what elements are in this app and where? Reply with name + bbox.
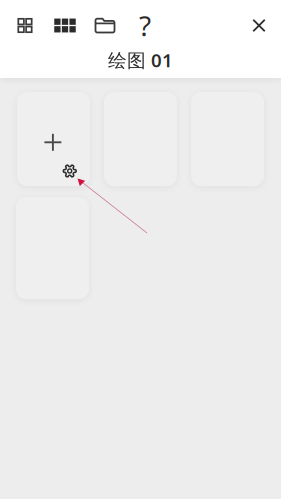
- button[interactable]: Small grid view: [5, 6, 45, 44]
- staticText: 绘图 01: [108, 48, 173, 72]
- button[interactable]: Close: [239, 6, 279, 44]
- button[interactable]: New drawing: [17, 92, 90, 186]
- button[interactable]: Large grid view: [45, 6, 85, 44]
- staticText: ?: [139, 7, 151, 44]
- button[interactable]: Help: [125, 6, 165, 44]
- button[interactable]: Folders: [85, 6, 125, 44]
